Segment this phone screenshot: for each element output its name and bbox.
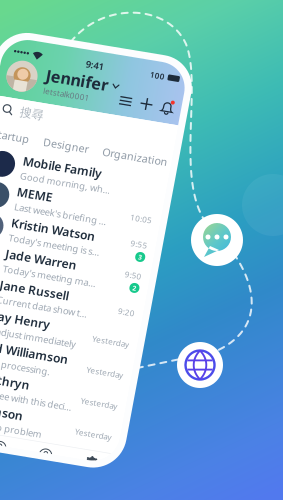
staticText: 100 <box>156 16 171 26</box>
button[interactable]: Jade Warren <box>7 212 193 244</box>
button[interactable]: Mobile Family <box>7 118 193 149</box>
staticText: Jade Warren <box>47 214 119 229</box>
staticText: Jennifer <box>54 28 117 49</box>
staticText: Last week's briefing went well <box>47 167 141 180</box>
button[interactable]: Organization <box>116 98 196 112</box>
staticText: I adjust immediately <box>47 293 133 306</box>
staticText: 10:05 <box>163 160 185 170</box>
staticText: I agree with this decision. <box>47 356 141 369</box>
staticText: Chat <box>23 423 37 432</box>
staticText: Yesterday <box>148 286 185 296</box>
button[interactable]: Ed Williamson <box>7 307 193 338</box>
staticText: Ed Williamson <box>47 308 128 324</box>
button[interactable]: Menu <box>128 43 144 57</box>
staticText: 搜尋 <box>35 72 59 87</box>
staticText: Jay Henry <box>47 277 104 292</box>
staticText: Yesterday <box>148 317 185 328</box>
staticText: Designer <box>63 98 109 112</box>
staticText: 9:55 <box>168 185 185 196</box>
staticText: Today's meeting is scheduled. <box>47 199 141 211</box>
staticText: Startup <box>11 98 49 112</box>
staticText: Kathryn <box>47 340 95 355</box>
staticText: 9:41 <box>91 15 109 27</box>
staticText: Jane Russell <box>47 245 117 261</box>
staticText: Samson <box>47 371 94 387</box>
button[interactable]: Startup <box>4 98 56 112</box>
staticText: MEME <box>47 151 83 166</box>
button[interactable]: Contacts <box>53 407 100 432</box>
button[interactable]: MEME <box>7 149 193 181</box>
staticText: Contacts <box>64 423 90 432</box>
button[interactable]: Kathryn <box>7 338 193 370</box>
staticText: Current data show that the satisfactio..… <box>47 262 141 274</box>
button[interactable]: New chat <box>149 43 165 57</box>
button[interactable]: Designer <box>56 98 116 112</box>
staticText: It is processing. <box>47 325 113 337</box>
staticText: Today's meeting material are ready. <box>47 230 141 243</box>
button[interactable]: Notifications <box>170 43 186 57</box>
button[interactable]: Me <box>100 407 146 432</box>
staticText: Yesterday <box>148 349 185 359</box>
button[interactable]: Website <box>177 342 223 388</box>
staticText: Yesterday <box>148 380 185 391</box>
button[interactable]: Chat <box>7 407 53 432</box>
button[interactable]: Samson <box>7 370 193 401</box>
staticText: Kristin Watson <box>47 182 132 198</box>
button[interactable]: Jay Henry <box>7 275 193 307</box>
staticText: Ok, no problem <box>47 388 116 400</box>
button[interactable]: Kristin Watson <box>7 181 193 212</box>
staticText: Good morning, who wants a cup of coffee? <box>47 136 141 148</box>
staticText: Organization <box>123 98 189 112</box>
button[interactable]: Messages <box>191 214 243 266</box>
staticText: letstalk0001 <box>54 49 101 60</box>
button[interactable]: Jane Russell <box>7 244 193 275</box>
button[interactable]: 搜尋 <box>7 67 193 92</box>
